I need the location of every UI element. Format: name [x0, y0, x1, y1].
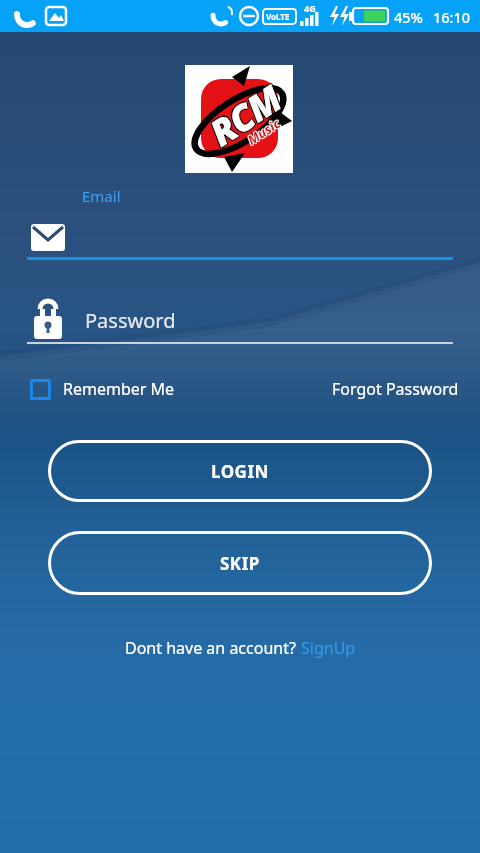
staticText: Password	[85, 307, 176, 334]
staticText: 4G	[304, 2, 316, 14]
staticText: Forgot Password	[332, 378, 459, 400]
staticText: Music	[243, 113, 283, 148]
staticText: RCM	[199, 73, 290, 156]
staticText: Music	[245, 114, 285, 148]
button[interactable]: LOGIN	[48, 440, 432, 502]
staticText: Music	[244, 114, 284, 149]
staticText: SignUp	[301, 637, 356, 659]
button[interactable]: SignUp	[301, 637, 356, 659]
button[interactable]: Password	[27, 296, 453, 344]
staticText: VoLTE	[266, 11, 290, 22]
staticText: RCM	[199, 75, 289, 157]
button[interactable]: Remember Me	[30, 378, 175, 400]
staticText: Dont have an account?	[125, 637, 301, 659]
staticText: RCM	[201, 75, 292, 157]
staticText: RCM	[200, 73, 291, 155]
staticText: RCM	[200, 74, 290, 157]
staticText: LOGIN	[211, 460, 269, 483]
button[interactable]	[27, 212, 453, 260]
staticText: Remember Me	[63, 378, 175, 400]
staticText: 16:10	[433, 7, 471, 27]
staticText: Music	[243, 115, 283, 149]
staticText: RCM	[200, 75, 291, 158]
staticText: RCM	[201, 74, 291, 156]
button[interactable]: Forgot Password	[332, 378, 459, 400]
staticText: 45%	[394, 7, 423, 27]
staticText: Email	[82, 186, 121, 206]
button[interactable]: SKIP	[48, 531, 432, 595]
staticText: RCM	[200, 76, 290, 158]
staticText: RCM	[198, 74, 289, 157]
staticText: Music	[244, 115, 284, 150]
staticText: SKIP	[220, 552, 260, 575]
